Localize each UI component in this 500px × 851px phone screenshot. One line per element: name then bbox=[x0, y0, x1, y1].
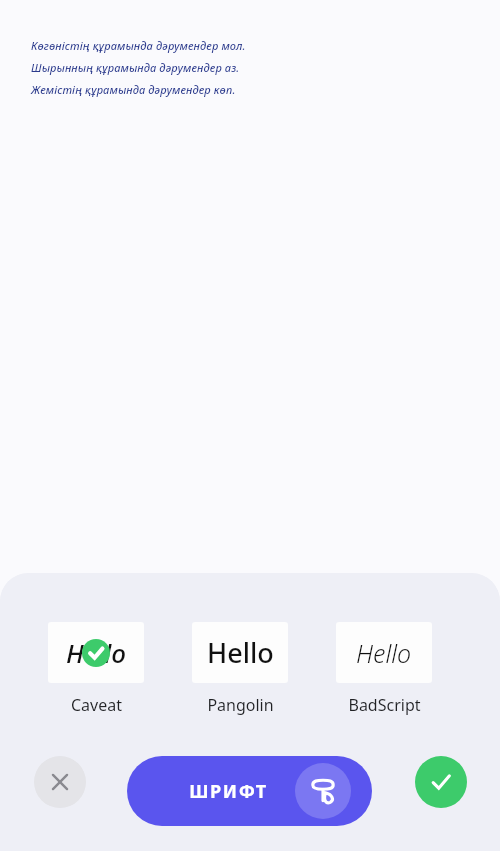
button[interactable]: Hello bbox=[192, 622, 288, 716]
button[interactable]: ШРИФТ bbox=[127, 756, 372, 826]
staticText: Pangolin bbox=[207, 694, 274, 716]
button[interactable]: Hello bbox=[336, 622, 432, 716]
staticText: ШРИФТ bbox=[189, 779, 268, 804]
staticText: Жемістің құрамында дәрумендер көп. bbox=[31, 82, 236, 97]
button[interactable]: Hello bbox=[48, 622, 144, 716]
staticText: Hello bbox=[207, 634, 274, 671]
staticText: Шырынның құрамында дәрумендер аз. bbox=[31, 60, 240, 75]
staticText: Hello bbox=[356, 636, 412, 670]
staticText: BadScript bbox=[348, 694, 421, 716]
staticText: Көгөністің құрамында дәрумендер мол. bbox=[31, 38, 246, 53]
button[interactable]: Font style bbox=[295, 763, 351, 819]
button[interactable]: Close bbox=[34, 756, 86, 808]
staticText: Caveat bbox=[71, 694, 122, 716]
staticText: Hello bbox=[66, 635, 127, 670]
button[interactable]: Confirm bbox=[415, 756, 467, 808]
